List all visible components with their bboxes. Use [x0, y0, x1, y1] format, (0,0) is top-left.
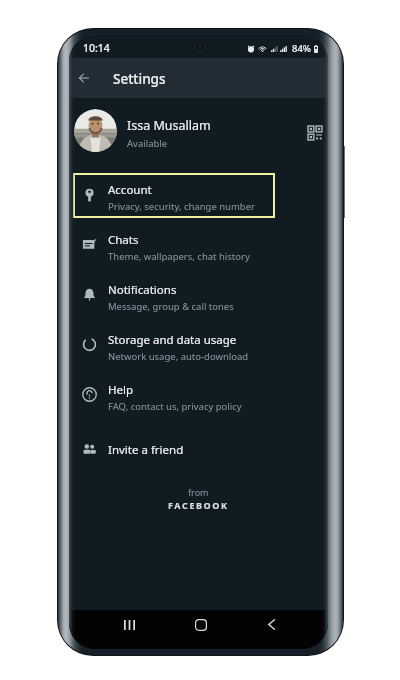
- button[interactable]: Help: [69, 372, 328, 422]
- staticText: Invite a friend: [108, 442, 184, 458]
- staticText: Notifications: [108, 282, 177, 298]
- staticText: Message, group & call tones: [108, 300, 234, 313]
- staticText: 84%: [292, 42, 311, 55]
- button[interactable]: Storage and data usage: [69, 322, 328, 372]
- staticText: Account: [108, 182, 152, 198]
- button[interactable]: Back: [255, 610, 287, 639]
- button[interactable]: Issa Musallam: [69, 98, 328, 160]
- button[interactable]: Recent apps: [113, 610, 145, 639]
- staticText: from: [188, 486, 209, 498]
- button[interactable]: Back: [69, 60, 102, 96]
- staticText: Settings: [113, 70, 166, 88]
- staticText: Available: [127, 137, 168, 150]
- staticText: Storage and data usage: [108, 332, 237, 348]
- button[interactable]: QR code: [302, 120, 328, 146]
- staticText: FAQ, contact us, privacy policy: [108, 400, 242, 413]
- button[interactable]: Invite a friend: [69, 422, 328, 472]
- button[interactable]: Chats: [69, 222, 328, 272]
- staticText: Privacy, security, change number: [108, 200, 255, 213]
- staticText: FACEBOOK: [168, 499, 229, 511]
- staticText: 10:14: [83, 41, 110, 55]
- staticText: Chats: [108, 232, 139, 248]
- button[interactable]: Account: [69, 172, 328, 222]
- button[interactable]: Home: [185, 610, 217, 639]
- staticText: Network usage, auto-download: [108, 350, 249, 363]
- staticText: Theme, wallpapers, chat history: [108, 250, 250, 263]
- staticText: Help: [108, 382, 134, 398]
- button[interactable]: Notifications: [69, 272, 328, 322]
- staticText: Issa Musallam: [127, 117, 211, 134]
